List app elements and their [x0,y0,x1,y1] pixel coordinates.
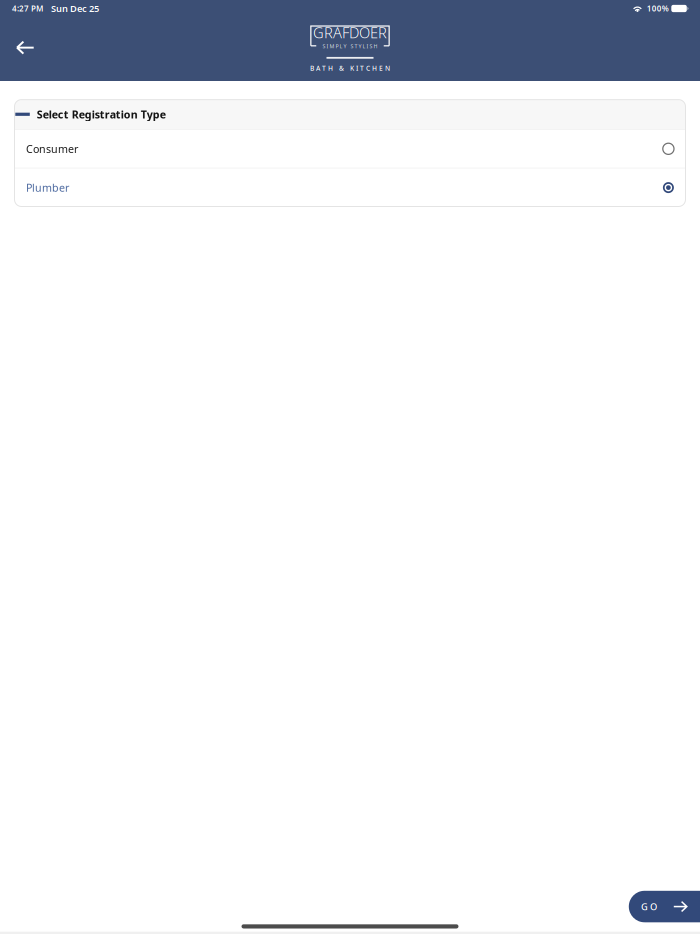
staticText: B A T H & K I T C H E N [310,64,390,73]
staticText: S I M P L Y S T Y L I S H [322,43,377,50]
button[interactable]: Consumer [14,130,685,168]
button[interactable]: Back [0,25,50,71]
staticText: Sun Dec 25 [51,2,99,15]
button[interactable]: Plumber [14,169,685,206]
button[interactable]: G O [611,891,700,922]
staticText: Select Registration Type [37,107,166,121]
staticText: GRAFDOER [313,23,387,42]
staticText: 4:27 PM [12,3,43,14]
staticText: 100% [647,3,669,14]
staticText: Consumer [26,142,78,156]
staticText: G O [641,900,657,913]
staticText: Plumber [26,180,69,195]
